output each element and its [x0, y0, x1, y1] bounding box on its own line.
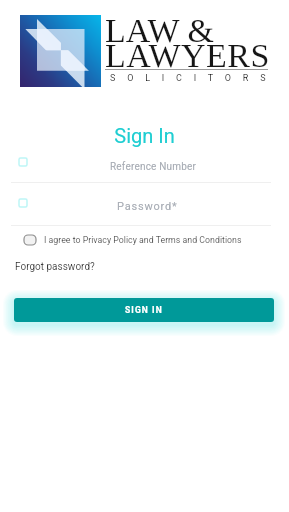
- staticText: LAW &: [105, 12, 215, 50]
- other: Field: [19, 158, 27, 166]
- staticText: I agree to Privacy Policy and Terms and …: [44, 235, 242, 245]
- staticText: SOLICITORS: [110, 73, 278, 84]
- staticText: Password*: [117, 200, 178, 213]
- staticText: SIGN IN: [125, 305, 163, 315]
- button[interactable]: I agree to Privacy Policy and Terms and …: [24, 232, 254, 248]
- staticText: Sign In: [0, 124, 289, 147]
- button[interactable]: SIGN IN: [14, 298, 274, 322]
- staticText: LAWYERS: [105, 37, 270, 75]
- other: Field: [19, 199, 27, 207]
- staticText: Reference Number: [110, 161, 197, 173]
- button[interactable]: Forgot password?: [15, 261, 95, 273]
